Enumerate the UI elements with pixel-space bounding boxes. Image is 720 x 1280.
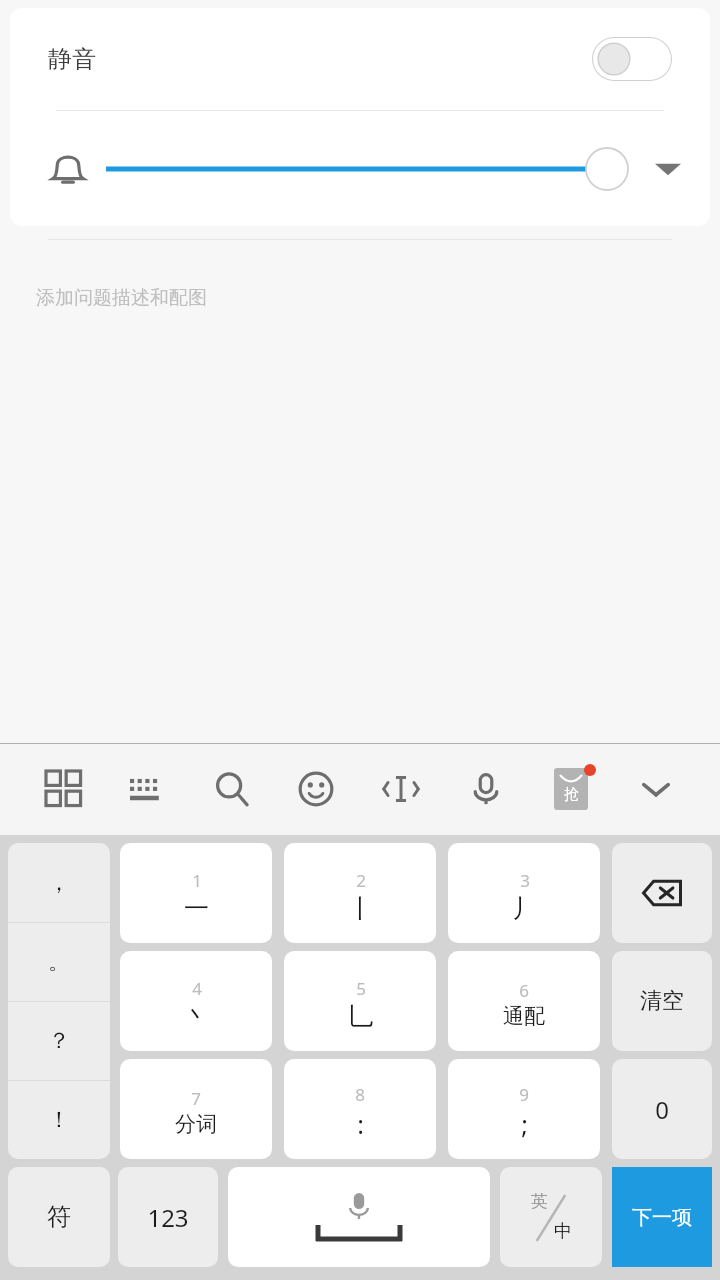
button[interactable]: Search <box>190 743 274 835</box>
staticText: 添加问题描述和配图 <box>36 286 207 310</box>
button[interactable]: Space, voice input <box>228 1167 490 1267</box>
button[interactable]: Red packet <box>528 743 613 835</box>
button[interactable]: Emoji <box>274 743 358 835</box>
staticText: 符 <box>47 1202 71 1232</box>
staticText: 5 <box>356 977 366 1000</box>
button[interactable]: 5 <box>284 951 436 1051</box>
button[interactable]: Voice input <box>443 743 528 835</box>
button[interactable]: Move cursor <box>358 743 443 835</box>
button[interactable]: Mute toggle <box>592 37 672 81</box>
staticText: 丶 <box>184 1001 209 1032</box>
staticText: 下一项 <box>632 1205 692 1230</box>
button[interactable]: 符 <box>8 1167 110 1267</box>
button[interactable]: Volume slider <box>106 143 628 195</box>
button[interactable]: 3 <box>448 843 600 943</box>
button[interactable]: Hide keyboard <box>613 743 698 835</box>
staticText: ; <box>521 1107 528 1141</box>
button[interactable]: ？ <box>8 1002 110 1080</box>
staticText: 123 <box>147 1201 189 1234</box>
button[interactable]: 7 <box>120 1059 272 1159</box>
staticText: 发布问题 <box>322 89 398 113</box>
staticText: 6 <box>519 979 529 1002</box>
staticText: 分词 <box>175 1111 217 1137</box>
staticText: 乚 <box>348 1001 373 1032</box>
staticText: 0 <box>655 1093 669 1126</box>
staticText: 静音 <box>48 44 96 74</box>
staticText: 。 <box>48 948 70 976</box>
staticText: 一 <box>184 893 209 924</box>
button[interactable]: 0 <box>612 1059 712 1159</box>
staticText: ？ <box>48 1027 70 1055</box>
staticText: 9 <box>519 1083 529 1106</box>
staticText: 3 <box>520 869 530 892</box>
staticText: : <box>357 1107 364 1141</box>
button[interactable]: 1 <box>120 843 272 943</box>
button[interactable]: English Chinese toggle <box>500 1167 602 1267</box>
staticText: 丨 <box>348 893 373 924</box>
staticText: ！ <box>48 1106 70 1134</box>
staticText: 1 <box>192 869 202 892</box>
staticText: 丿 <box>512 893 537 924</box>
button[interactable]: 6 <box>448 951 600 1051</box>
button[interactable]: 4 <box>120 951 272 1051</box>
button[interactable]: 9 <box>448 1059 600 1159</box>
staticText: 清空 <box>640 987 684 1015</box>
staticText: 2 <box>356 869 366 892</box>
staticText: 中 <box>554 1220 572 1243</box>
button[interactable]: 8 <box>284 1059 436 1159</box>
staticText: 4 <box>192 977 202 1000</box>
button[interactable]: ， <box>8 843 110 922</box>
staticText: ， <box>48 869 70 897</box>
button[interactable]: 123 <box>118 1167 218 1267</box>
staticText: 英 <box>531 1191 548 1212</box>
staticText: 抢 <box>564 785 579 804</box>
button[interactable]: Keyboard <box>106 743 190 835</box>
button[interactable]: 。 <box>8 923 110 1001</box>
button[interactable]: 2 <box>284 843 436 943</box>
staticText: 8 <box>355 1083 365 1106</box>
staticText: 通配 <box>503 1003 545 1029</box>
button[interactable]: ！ <box>8 1081 110 1159</box>
button[interactable]: Expand volume options <box>646 147 690 191</box>
button[interactable]: 下一项 <box>612 1167 712 1267</box>
button[interactable]: 清空 <box>612 951 712 1051</box>
button[interactable]: Backspace <box>612 843 712 943</box>
button[interactable]: Menu <box>22 743 106 835</box>
staticText: 7 <box>191 1087 201 1110</box>
